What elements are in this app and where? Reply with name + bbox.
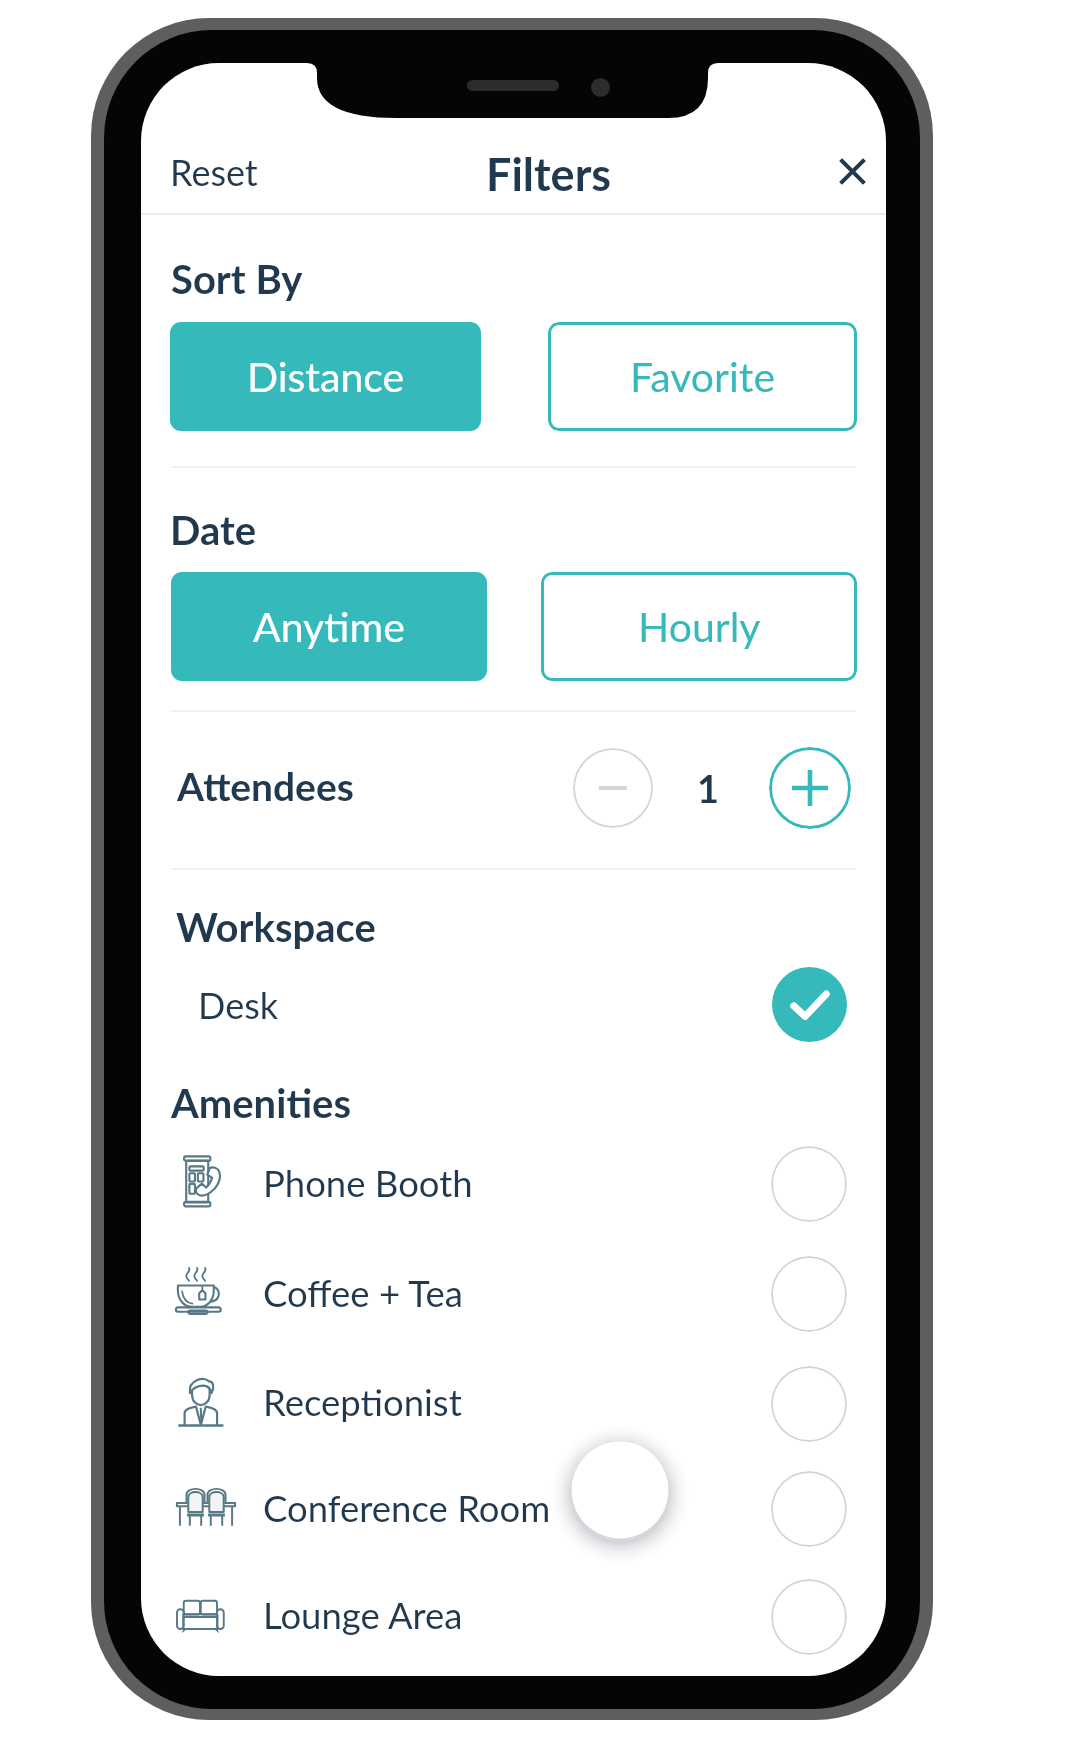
button[interactable]: Close <box>824 143 880 199</box>
staticText: Workspace <box>176 903 376 951</box>
button[interactable] <box>141 1454 886 1564</box>
staticText: Conference Room <box>263 1486 551 1530</box>
staticText: Receptionist <box>263 1380 462 1424</box>
button[interactable]: Anytime <box>171 572 487 681</box>
button[interactable] <box>141 1349 886 1459</box>
button[interactable]: Distance <box>170 322 481 431</box>
staticText: 1 <box>697 765 720 811</box>
button[interactable] <box>141 1129 886 1239</box>
staticText: Date <box>170 506 257 554</box>
staticText: Reset <box>170 150 258 193</box>
button[interactable] <box>141 951 886 1061</box>
staticText: Attendees <box>177 763 354 810</box>
button[interactable]: Increase attendees <box>769 747 851 829</box>
staticText: Lounge Area <box>263 1593 463 1637</box>
staticText: Anytime <box>253 602 405 651</box>
button[interactable] <box>141 1239 886 1349</box>
staticText: Distance <box>247 352 405 401</box>
staticText: Sort By <box>171 255 303 303</box>
button[interactable]: Hourly <box>541 572 857 681</box>
staticText: Desk <box>198 983 279 1026</box>
button[interactable]: Reset <box>154 140 274 203</box>
button[interactable]: Decrease attendees <box>573 748 653 828</box>
staticText: Filters <box>486 147 612 201</box>
staticText: Coffee + Tea <box>263 1271 463 1315</box>
staticText: Phone Booth <box>263 1161 473 1205</box>
staticText: Hourly <box>638 602 761 651</box>
staticText: Amenities <box>171 1079 351 1127</box>
button[interactable]: Favorite <box>548 322 857 431</box>
staticText: Favorite <box>630 352 776 401</box>
button[interactable] <box>141 1562 886 1672</box>
